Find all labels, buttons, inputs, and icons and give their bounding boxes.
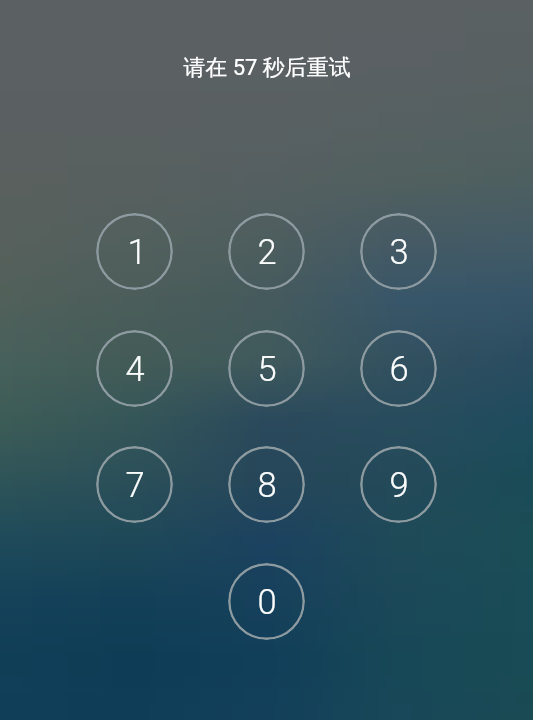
button[interactable]: Digit 1 — [96, 213, 173, 290]
button[interactable]: Digit 5 — [228, 330, 305, 407]
button[interactable]: Digit 7 — [96, 446, 173, 523]
staticText: 1 — [127, 232, 147, 272]
staticText: 6 — [389, 349, 409, 389]
staticText: 请在 57 秒后重试 — [183, 54, 351, 82]
button[interactable]: Digit 4 — [96, 330, 173, 407]
button[interactable]: Digit 9 — [360, 446, 437, 523]
button[interactable]: Digit 6 — [360, 330, 437, 407]
staticText: 4 — [125, 349, 145, 389]
staticText: 5 — [257, 349, 277, 389]
button[interactable]: Digit 2 — [228, 213, 305, 290]
staticText: 3 — [389, 232, 409, 272]
staticText: 9 — [389, 465, 409, 505]
staticText: 8 — [257, 465, 277, 505]
button[interactable]: Digit 8 — [228, 446, 305, 523]
staticText: 2 — [257, 232, 277, 272]
button[interactable]: Digit 0 — [228, 563, 305, 640]
staticText: 0 — [257, 582, 277, 622]
staticText: 7 — [125, 465, 145, 505]
button[interactable]: Digit 3 — [360, 213, 437, 290]
